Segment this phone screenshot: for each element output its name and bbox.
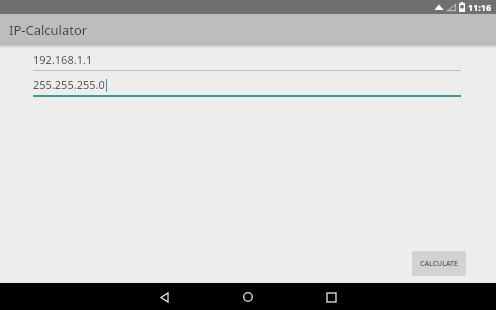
staticText: IP-Calculator xyxy=(9,21,88,39)
staticText: 255.255.255.0 xyxy=(33,77,105,92)
button[interactable]: Home xyxy=(235,284,261,310)
button[interactable]: CALCULATE xyxy=(412,251,466,276)
button[interactable]: 192.168.1.1 xyxy=(33,52,461,71)
button[interactable]: Back xyxy=(152,284,178,310)
button[interactable]: 255.255.255.0 xyxy=(33,77,461,97)
staticText: 11:16 xyxy=(468,1,492,13)
staticText: 192.168.1.1 xyxy=(33,52,93,67)
staticText: CALCULATE xyxy=(420,259,458,269)
button[interactable]: Recent apps xyxy=(318,284,344,310)
